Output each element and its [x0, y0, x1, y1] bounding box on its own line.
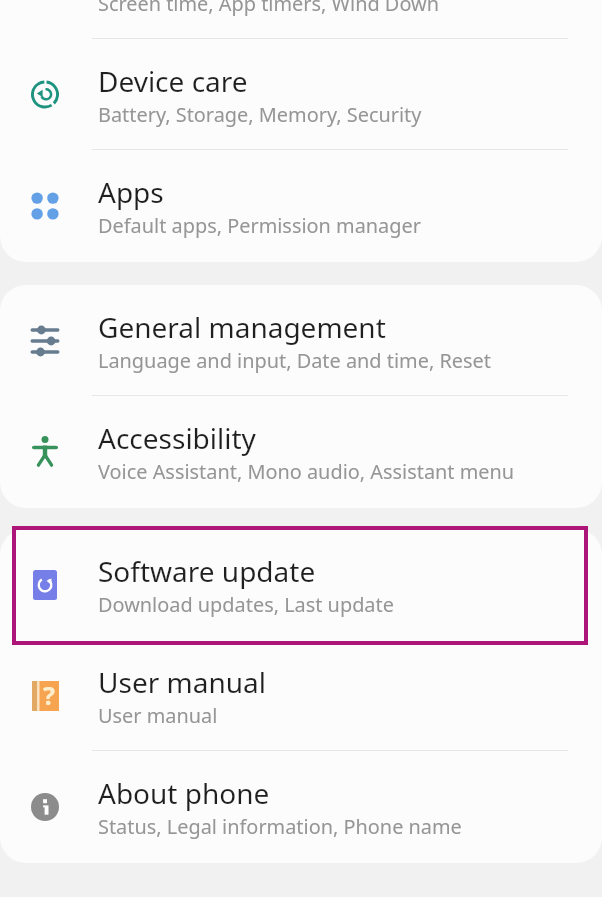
button[interactable]: About phone — [0, 751, 602, 862]
staticText: Accessibility — [98, 419, 256, 457]
button[interactable]: Apps — [0, 150, 602, 261]
staticText: Device care — [98, 62, 248, 100]
staticText: Battery, Storage, Memory, Security — [98, 101, 422, 128]
staticText: Screen time, App timers, Wind Down — [98, 0, 439, 17]
staticText: ? — [43, 678, 55, 708]
staticText: About phone — [98, 774, 270, 812]
staticText: User manual — [98, 663, 266, 701]
staticText: Download updates, Last update — [98, 591, 394, 618]
staticText: Software update — [98, 552, 316, 590]
staticText: Apps — [98, 173, 164, 211]
staticText: Status, Legal information, Phone name — [98, 813, 462, 840]
button[interactable]: User manual — [0, 640, 602, 751]
button[interactable]: Software update — [0, 529, 602, 640]
staticText: User manual — [98, 702, 218, 729]
staticText: Language and input, Date and time, Reset — [98, 347, 491, 374]
staticText: Default apps, Permission manager — [98, 212, 421, 239]
staticText: General management — [98, 308, 386, 346]
button[interactable]: Accessibility — [0, 396, 602, 507]
button[interactable]: Device care — [0, 39, 602, 150]
button[interactable]: General management — [0, 285, 602, 396]
staticText: Voice Assistant, Mono audio, Assistant m… — [98, 458, 515, 485]
button[interactable]: Digital wellbeing — [0, 0, 602, 39]
